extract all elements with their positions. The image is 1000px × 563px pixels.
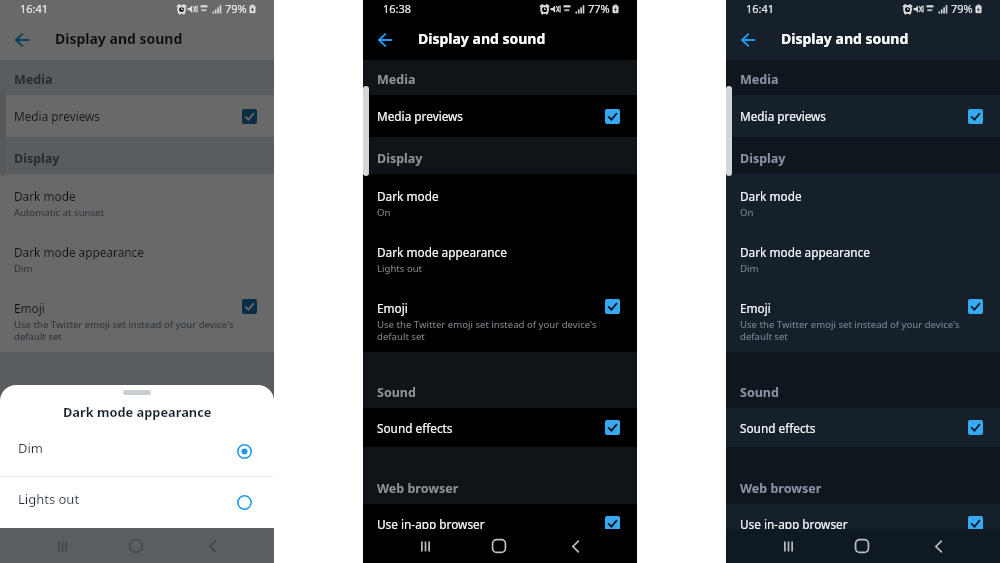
button[interactable]: Use in-app browser [0,504,274,543]
button[interactable]: Navigate up [726,17,768,59]
staticText: 79% [951,1,973,16]
button[interactable]: Recent apps [765,531,811,561]
button[interactable]: Recent apps [39,531,85,561]
button[interactable]: Lights out [0,477,274,521]
staticText: Emoji [377,300,408,316]
staticText: On [740,206,754,219]
staticText: Dark mode appearance [63,403,212,420]
staticText: Web browser [14,480,96,497]
staticText: Use in-app browser [377,516,595,532]
button[interactable]: Media previews [726,95,1000,137]
staticText: 79% [225,1,247,16]
staticText: Media previews [740,108,958,124]
button[interactable]: Dark mode [363,174,637,222]
button[interactable]: Home [839,531,885,561]
staticText: Web browser [377,480,459,497]
staticText: Web browser [740,480,822,497]
staticText: Sound effects [377,420,595,436]
staticText: Media previews [14,108,232,124]
button[interactable]: Use in-app browser [363,504,637,543]
button[interactable]: Back [552,531,598,561]
staticText: Media previews [377,108,595,124]
staticText: 16:38 [383,1,412,16]
staticText: Display [377,150,423,167]
button[interactable]: Recent apps [39,531,85,561]
staticText: Display and sound [55,29,183,48]
staticText: Use in-app browser [740,516,958,532]
staticText: Use the Twitter emoji set instead of you… [377,318,623,343]
staticText: Display and sound [781,29,909,48]
staticText: Lights out [18,490,237,508]
staticText: Sound [740,384,779,401]
button[interactable]: Back [915,531,961,561]
button[interactable]: Use in-app browser [726,504,1000,543]
button[interactable]: Navigate up [363,17,405,59]
staticText: Display [14,150,60,167]
staticText: On [377,206,391,219]
staticText: 16:41 [746,1,775,16]
button[interactable]: Emoji [726,278,1000,352]
staticText: Dark mode [740,188,802,204]
staticText: Media [377,71,416,88]
staticText: Use the Twitter emoji set instead of you… [14,318,260,343]
staticText: Display and sound [418,29,546,48]
staticText: 16:41 [20,1,49,16]
staticText: Media [14,71,53,88]
staticText: Use in-app browser [14,516,232,532]
staticText: Emoji [740,300,771,316]
button[interactable]: Dark mode appearance [726,222,1000,278]
button[interactable]: Sound effects [363,408,637,447]
button[interactable]: Home [113,531,159,561]
staticText: Sound [14,384,53,401]
button[interactable]: Media previews [363,95,637,137]
staticText: 77% [588,1,610,16]
button[interactable]: Home [476,531,522,561]
button[interactable]: Dark mode appearance [0,222,274,278]
staticText: Dark mode appearance [377,244,507,260]
button[interactable]: Navigate up [0,17,42,59]
button[interactable]: Recent apps [402,531,448,561]
button[interactable]: Dark mode [0,174,274,222]
staticText: Sound effects [740,420,958,436]
staticText: Dim [14,262,33,275]
staticText: Sound [377,384,416,401]
staticText: Lights out [377,262,423,275]
staticText: Media [740,71,779,88]
staticText: Dark mode [377,188,439,204]
staticText: Dark mode appearance [14,244,144,260]
staticText: Use the Twitter emoji set instead of you… [740,318,986,343]
staticText: Dim [740,262,759,275]
button[interactable]: Dim [0,420,274,476]
staticText: Emoji [14,300,45,316]
button[interactable]: Back [189,531,235,561]
staticText: Dark mode [14,188,76,204]
button[interactable]: Emoji [0,278,274,352]
button[interactable]: Sound effects [726,408,1000,447]
button[interactable]: Dark mode [726,174,1000,222]
staticText: Automatic at sunset [14,206,104,219]
staticText: Dark mode appearance [740,244,870,260]
button[interactable]: Emoji [363,278,637,352]
button[interactable]: Back [189,531,235,561]
button[interactable]: Sound effects [0,408,274,447]
button[interactable]: Dark mode appearance [363,222,637,278]
button[interactable]: Home [113,531,159,561]
staticText: Dim [18,439,237,457]
button[interactable]: Media previews [0,95,274,137]
staticText: Display [740,150,786,167]
